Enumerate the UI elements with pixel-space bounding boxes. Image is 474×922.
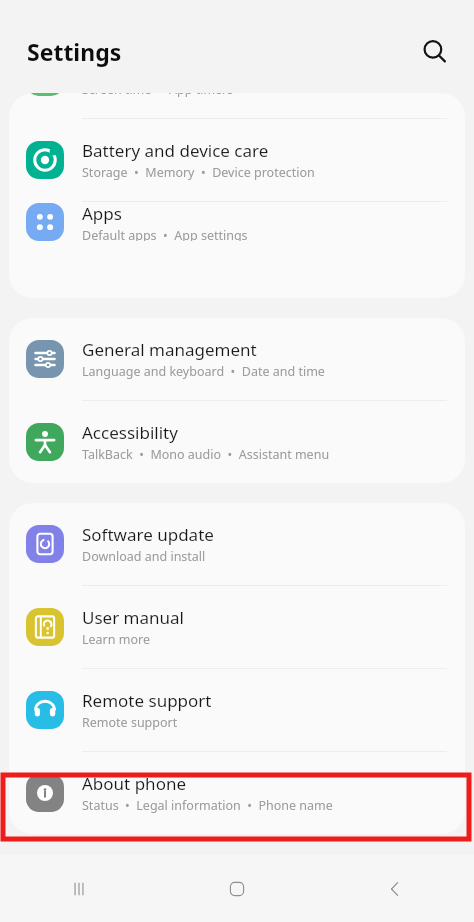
staticText: Screen time • App timers [82, 93, 234, 98]
staticText: TalkBack • Mono audio • Assistant menu [82, 446, 330, 463]
button[interactable]: Home [158, 855, 316, 922]
button[interactable]: Battery and device care [9, 119, 465, 202]
staticText: User manual [82, 606, 184, 629]
staticText: Battery and device care [82, 139, 269, 162]
staticText: Download and install [82, 548, 206, 565]
staticText: Status • Legal information • Phone name [82, 797, 333, 814]
button[interactable]: Remote support [9, 669, 465, 752]
staticText: Language and keyboard • Date and time [82, 363, 325, 380]
button[interactable]: User manual [9, 586, 465, 669]
staticText: Default apps • App settings [82, 227, 248, 241]
staticText: Learn more [82, 631, 150, 648]
staticText: Apps [82, 202, 122, 225]
button[interactable]: Search [412, 29, 458, 75]
staticText: Settings [27, 36, 122, 67]
staticText: General management [82, 338, 257, 361]
staticText: Remote support [82, 714, 178, 731]
button[interactable]: Software update [9, 503, 465, 586]
button[interactable]: Recents [0, 855, 158, 922]
button[interactable]: Apps [9, 202, 465, 241]
button[interactable]: Back [316, 855, 474, 922]
staticText: Accessibility [82, 421, 178, 444]
button[interactable]: Accessibility [9, 401, 465, 483]
staticText: About phone [82, 772, 187, 795]
button[interactable]: General management [9, 318, 465, 401]
button[interactable]: About phone [9, 752, 465, 834]
staticText: Storage • Memory • Device protection [82, 164, 315, 181]
staticText: Remote support [82, 689, 212, 712]
staticText: Software update [82, 523, 214, 546]
button[interactable]: Digital Wellbeing [9, 93, 465, 119]
